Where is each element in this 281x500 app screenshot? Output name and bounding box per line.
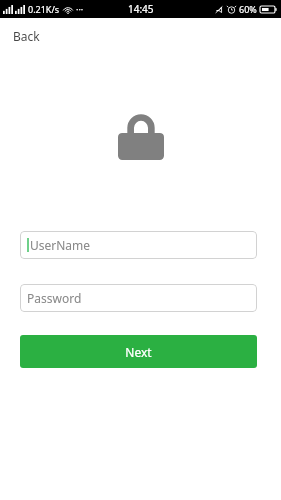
staticText: Next: [125, 344, 152, 360]
staticText: 60%: [239, 3, 257, 15]
button[interactable]: UserName: [20, 231, 257, 259]
staticText: Password: [27, 290, 82, 306]
other: Lock: [118, 112, 164, 160]
staticText: Back: [13, 28, 40, 44]
staticText: ···: [76, 3, 84, 15]
staticText: 14:45: [128, 2, 154, 16]
button[interactable]: Next: [20, 335, 257, 368]
button[interactable]: Password: [20, 284, 257, 312]
staticText: 0.21K/s: [28, 3, 60, 15]
staticText: UserName: [30, 237, 91, 253]
button[interactable]: Back: [12, 26, 41, 46]
